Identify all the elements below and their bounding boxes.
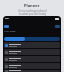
button[interactable]: [4, 63, 60, 69]
staticText: Planner: [24, 3, 40, 8]
button[interactable]: [4, 49, 60, 55]
button[interactable]: Today: [4, 25, 9, 28]
button[interactable]: Calendar: [55, 25, 60, 28]
staticText: 9:41: [5, 17, 10, 20]
button[interactable]: [4, 56, 60, 62]
button[interactable]: [4, 42, 60, 48]
button[interactable]: [4, 37, 60, 41]
staticText: Get a roadmap tailored to what you feel …: [18, 9, 47, 15]
button[interactable]: [4, 70, 60, 72]
staticText: Your week: [4, 29, 16, 32]
